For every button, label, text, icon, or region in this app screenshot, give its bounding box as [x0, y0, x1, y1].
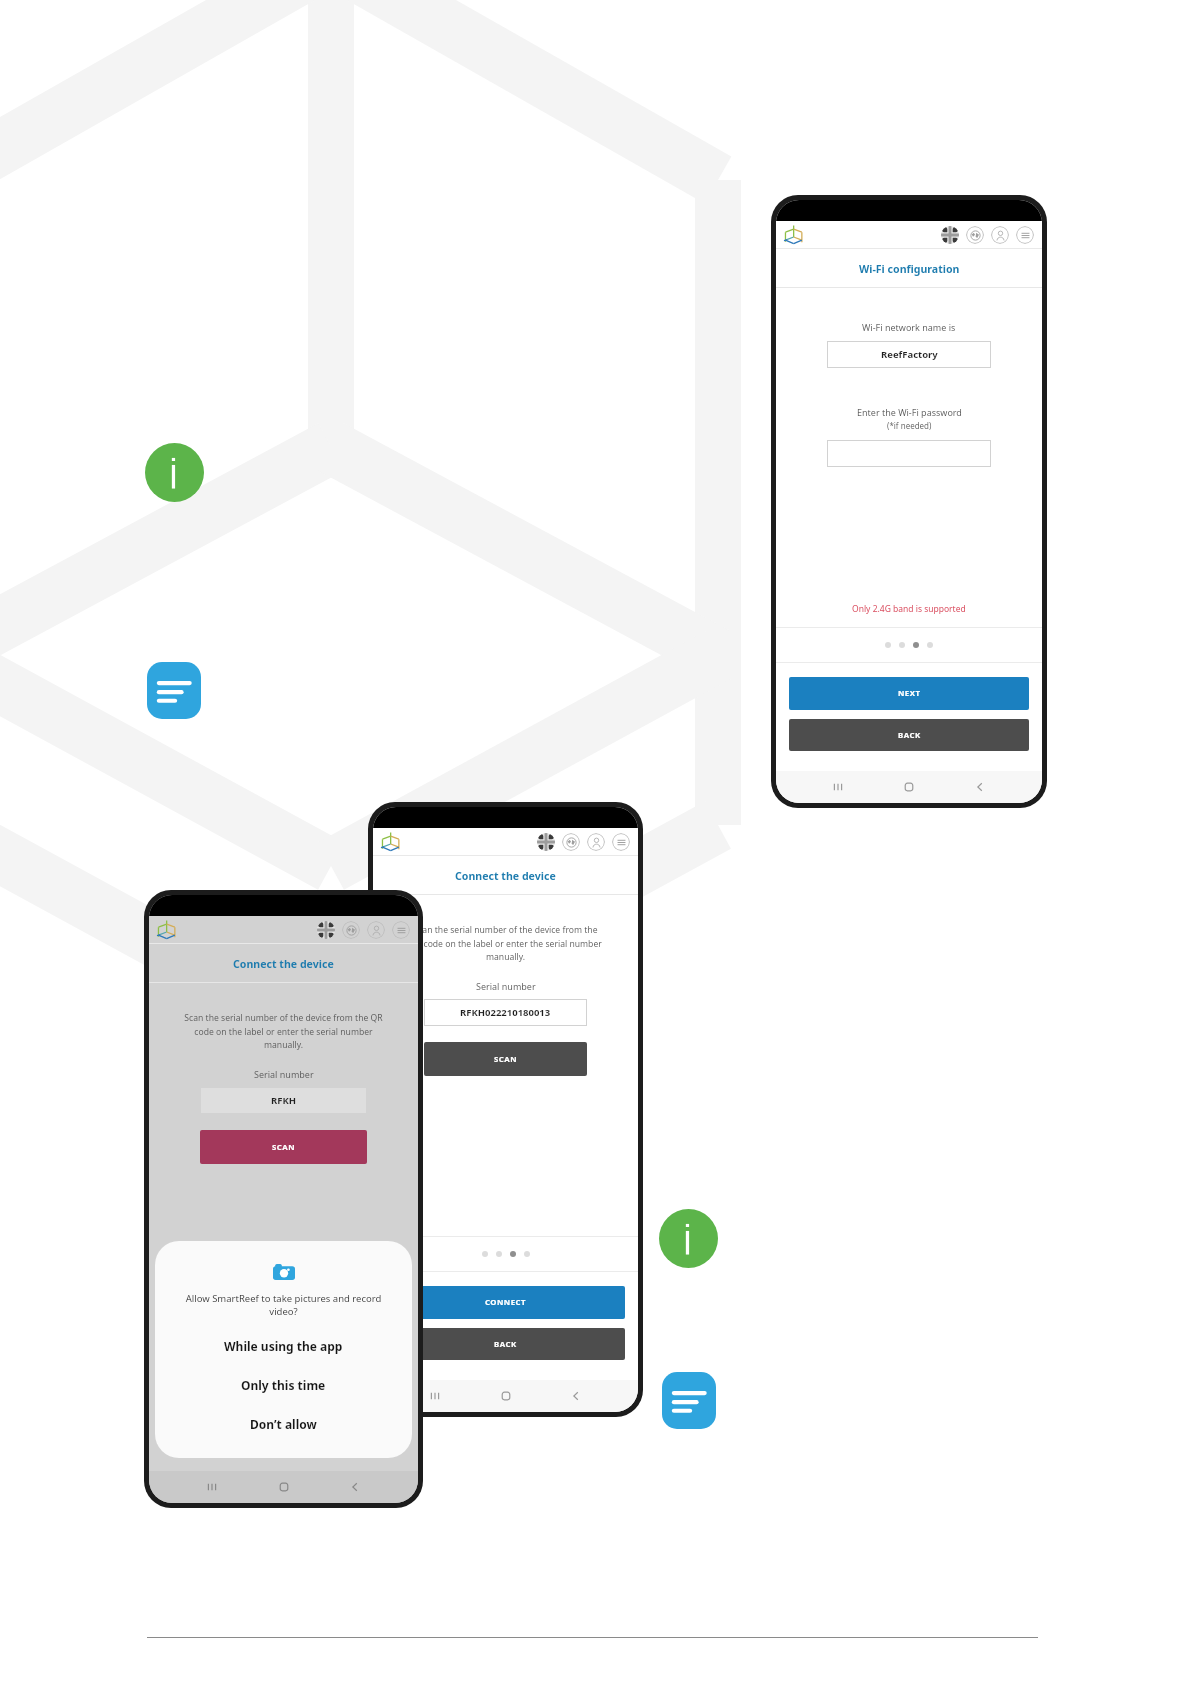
staticText: RFKH — [271, 1094, 297, 1107]
button[interactable]: Menu — [392, 921, 410, 939]
button[interactable] — [827, 440, 991, 467]
button[interactable]: CONNECT — [386, 1286, 625, 1319]
button[interactable]: Back — [346, 1478, 364, 1496]
button[interactable]: Account — [587, 833, 605, 851]
button[interactable]: Information — [659, 1209, 718, 1268]
button[interactable]: Language: English — [537, 833, 555, 851]
button[interactable]: Home — [275, 1478, 293, 1496]
button[interactable]: Documentation — [662, 1372, 716, 1429]
staticText: Don’t allow — [250, 1416, 317, 1432]
button[interactable]: Menu — [1016, 226, 1034, 244]
button[interactable]: Language: English — [941, 226, 959, 244]
staticText: BACK — [494, 1339, 517, 1350]
staticText: Enter the Wi-Fi password — [857, 406, 962, 418]
staticText: SCAN — [272, 1142, 296, 1153]
button[interactable]: Only this time — [175, 1375, 392, 1395]
other: Camera — [273, 1264, 295, 1280]
other: SmartReef home — [784, 225, 805, 245]
staticText: Wi-Fi configuration — [859, 262, 960, 276]
staticText: Wi-Fi network name is — [862, 321, 956, 333]
button[interactable]: BACK — [789, 719, 1029, 751]
staticText: NEXT — [898, 688, 921, 699]
button[interactable]: RFKH022210180013 — [424, 999, 587, 1026]
staticText: Scan the serial number of the device fro… — [407, 924, 604, 962]
staticText: Connect the device — [233, 957, 334, 971]
staticText: Only 2.4G band is supported — [852, 603, 966, 615]
button[interactable]: Home — [900, 778, 918, 796]
staticText: CONNECT — [485, 1297, 527, 1308]
staticText: RFKH022210180013 — [460, 1006, 551, 1019]
button[interactable]: Don’t allow — [175, 1414, 392, 1434]
button[interactable]: Account — [991, 226, 1009, 244]
button[interactable]: Information — [145, 443, 204, 502]
button[interactable]: NEXT — [789, 677, 1029, 710]
button[interactable]: Menu — [612, 833, 630, 851]
staticText: While using the app — [224, 1338, 343, 1354]
button[interactable]: Back — [971, 778, 989, 796]
other: SmartReef home — [381, 832, 402, 852]
button[interactable]: Language — [562, 833, 580, 851]
staticText: (*if needed) — [887, 420, 932, 431]
staticText: Serial number — [254, 1068, 314, 1080]
staticText: Scan the serial number of the device fro… — [183, 1012, 384, 1050]
button[interactable]: Back — [567, 1387, 585, 1405]
button[interactable]: While using the app — [175, 1336, 392, 1356]
button[interactable]: RFKH — [200, 1087, 367, 1114]
button[interactable]: Language — [342, 921, 360, 939]
staticText: ReefFactory — [881, 348, 938, 361]
staticText: Serial number — [476, 980, 536, 992]
staticText: Connect the device — [455, 869, 556, 883]
button[interactable]: SCAN — [424, 1042, 587, 1076]
button[interactable]: BACK — [386, 1328, 625, 1360]
button[interactable]: SCAN — [200, 1130, 367, 1164]
button[interactable]: Documentation — [147, 662, 201, 719]
button[interactable]: Recents — [426, 1387, 444, 1405]
staticText: Allow SmartReef to take pictures and rec… — [175, 1292, 392, 1318]
button[interactable]: Recents — [203, 1478, 221, 1496]
staticText: SCAN — [494, 1054, 518, 1065]
other: SmartReef home — [157, 920, 178, 940]
button[interactable]: Language — [966, 226, 984, 244]
button[interactable]: Home — [497, 1387, 515, 1405]
staticText: Only this time — [241, 1377, 326, 1393]
staticText: BACK — [898, 730, 921, 741]
button[interactable]: Recents — [829, 778, 847, 796]
button[interactable]: Language: English — [317, 921, 335, 939]
button[interactable]: Account — [367, 921, 385, 939]
button[interactable]: ReefFactory — [827, 341, 991, 368]
